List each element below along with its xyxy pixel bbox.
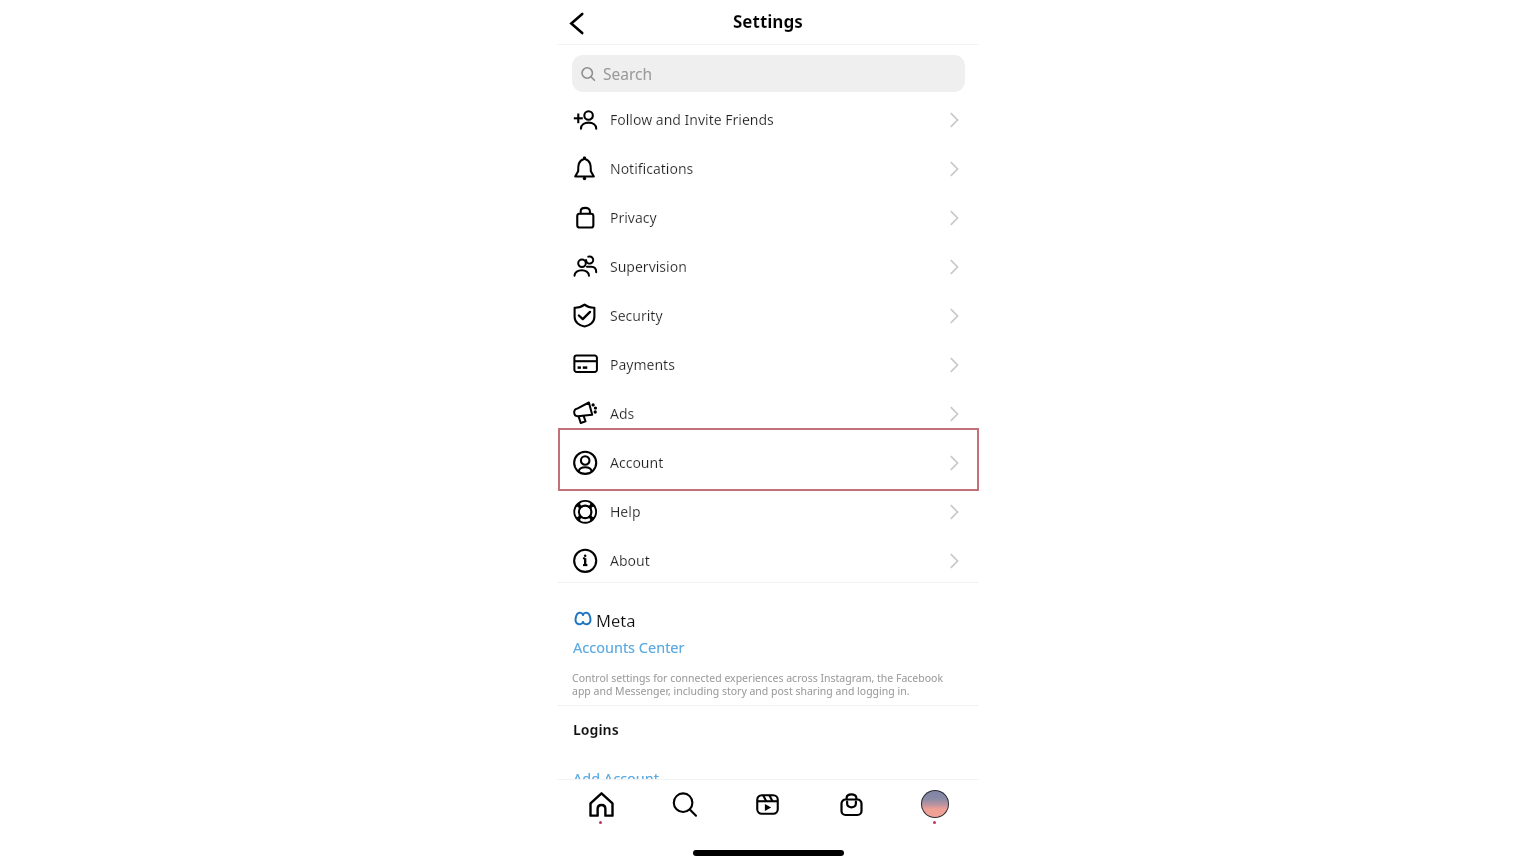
button[interactable]: Supervision bbox=[557, 242, 979, 291]
staticText: Follow and Invite Friends bbox=[610, 110, 774, 129]
staticText: Accounts Center bbox=[573, 637, 685, 657]
button[interactable]: Account bbox=[557, 438, 979, 487]
staticText: Search bbox=[603, 63, 653, 84]
staticText: Ads bbox=[610, 404, 635, 423]
staticText: Logins bbox=[573, 720, 619, 739]
button[interactable]: Security bbox=[557, 291, 979, 340]
button[interactable]: Help bbox=[557, 487, 979, 536]
button[interactable]: Privacy bbox=[557, 193, 979, 242]
staticText: About bbox=[610, 551, 650, 570]
button[interactable]: Payments bbox=[557, 340, 979, 389]
staticText: Supervision bbox=[610, 257, 687, 276]
button[interactable]: Accounts Center bbox=[573, 637, 685, 657]
staticText: Security bbox=[610, 306, 663, 325]
button[interactable]: Reels bbox=[747, 784, 787, 824]
button[interactable]: About bbox=[557, 536, 979, 585]
staticText: Account bbox=[610, 453, 664, 472]
staticText: Control settings for connected experienc… bbox=[572, 671, 964, 698]
button[interactable]: Back bbox=[558, 5, 594, 41]
button[interactable]: Follow and Invite Friends bbox=[557, 95, 979, 144]
staticText: Privacy bbox=[610, 208, 657, 227]
button[interactable]: Add Account bbox=[573, 768, 659, 788]
button[interactable]: Search bbox=[664, 784, 704, 824]
staticText: Settings bbox=[733, 10, 803, 33]
button[interactable]: Search bbox=[572, 55, 965, 92]
button[interactable]: Ads bbox=[557, 389, 979, 438]
button[interactable]: Profile bbox=[915, 784, 955, 824]
staticText: Notifications bbox=[610, 159, 694, 178]
staticText: Help bbox=[610, 502, 641, 521]
button[interactable]: Notifications bbox=[557, 144, 979, 193]
button[interactable]: Shop bbox=[831, 784, 871, 824]
staticText: Add Account bbox=[573, 768, 659, 788]
staticText: Payments bbox=[610, 355, 675, 374]
button[interactable]: Home bbox=[581, 784, 621, 824]
staticText: Meta bbox=[596, 609, 636, 631]
